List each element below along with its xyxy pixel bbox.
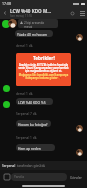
staticText: Aradığın ürün 40 TL'lik indirim fırsatıy… [18,63,69,72]
staticText: 17:08 [2,1,11,6]
staticText: Hocam bu fotoğraf eski [18,122,49,126]
staticText: Yüzde 40 mı hocam [17,32,48,36]
staticText: Gönder [70,175,83,180]
button[interactable]: Back [0,8,10,18]
staticText: Mağazaya Git: lcwaikiki.com/kampanya Kam… [18,73,69,79]
staticText: dersel 1 dk. [16,92,34,96]
button[interactable]: Tebrikler! [16,53,71,86]
button[interactable]: Hem ap neden kapatılmış [16,144,55,151]
staticText: Son mesaj: 11:55 [10,14,33,18]
button[interactable]: LCW %40 KDO %5 [16,98,53,105]
button[interactable]: Notifications [67,8,77,18]
button[interactable]: Hocam bu fotoğraf eski [16,120,51,127]
staticText: tarafından görüldü [17,164,46,168]
staticText: Serpenal 7 dk. [16,112,38,116]
staticText: Yanıtla [14,175,24,179]
staticText: Serpenal [2,164,17,168]
button[interactable]: 2 kişi arasında [18,19,58,28]
button[interactable]: Gönder [67,173,85,181]
staticText: Serpenal 1 dk. [16,136,38,140]
staticText: LCW %40 KDO %5 [18,100,46,104]
staticText: Tebrikler! [33,55,55,61]
staticText: LCW %40 KDO M... [10,8,52,14]
staticText: mesaj [24,25,33,28]
button[interactable]: Menu [77,8,87,18]
staticText: 2 kişi arasında [24,21,45,25]
staticText: dersel 1 dk. [16,44,34,48]
button[interactable]: Yüzde 40 mı hocam [15,30,53,37]
button[interactable]: Compose [2,172,11,181]
staticText: Hem ap neden kapatılmış [18,146,53,150]
button[interactable]: Yanıtla [11,173,67,181]
